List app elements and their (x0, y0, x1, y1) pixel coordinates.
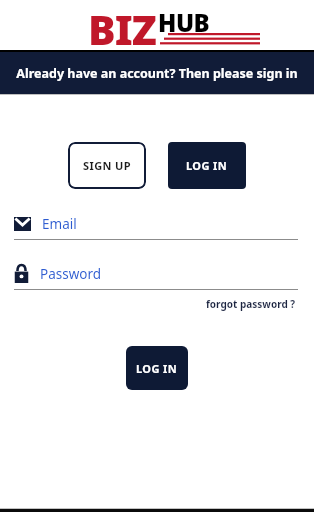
button[interactable]: Password (14, 264, 298, 283)
other: Email (14, 217, 31, 231)
button[interactable]: SIGN UP (68, 142, 146, 189)
button[interactable]: forgot password ? (204, 295, 298, 313)
staticText: SIGN UP (83, 158, 132, 173)
staticText: LOG IN (136, 361, 178, 376)
staticText: BIZ (88, 1, 156, 52)
staticText: forgot password ? (206, 297, 296, 311)
staticText: LOG IN (186, 158, 228, 173)
other: Password (14, 264, 29, 283)
button[interactable]: LOG IN (126, 346, 188, 390)
staticText: Already have an account? Then please sig… (16, 65, 298, 82)
staticText: Email (42, 215, 77, 233)
button[interactable]: Email (14, 215, 298, 233)
staticText: Password (40, 265, 102, 283)
button[interactable]: LOG IN (168, 142, 246, 189)
staticText: HUB (158, 6, 210, 39)
